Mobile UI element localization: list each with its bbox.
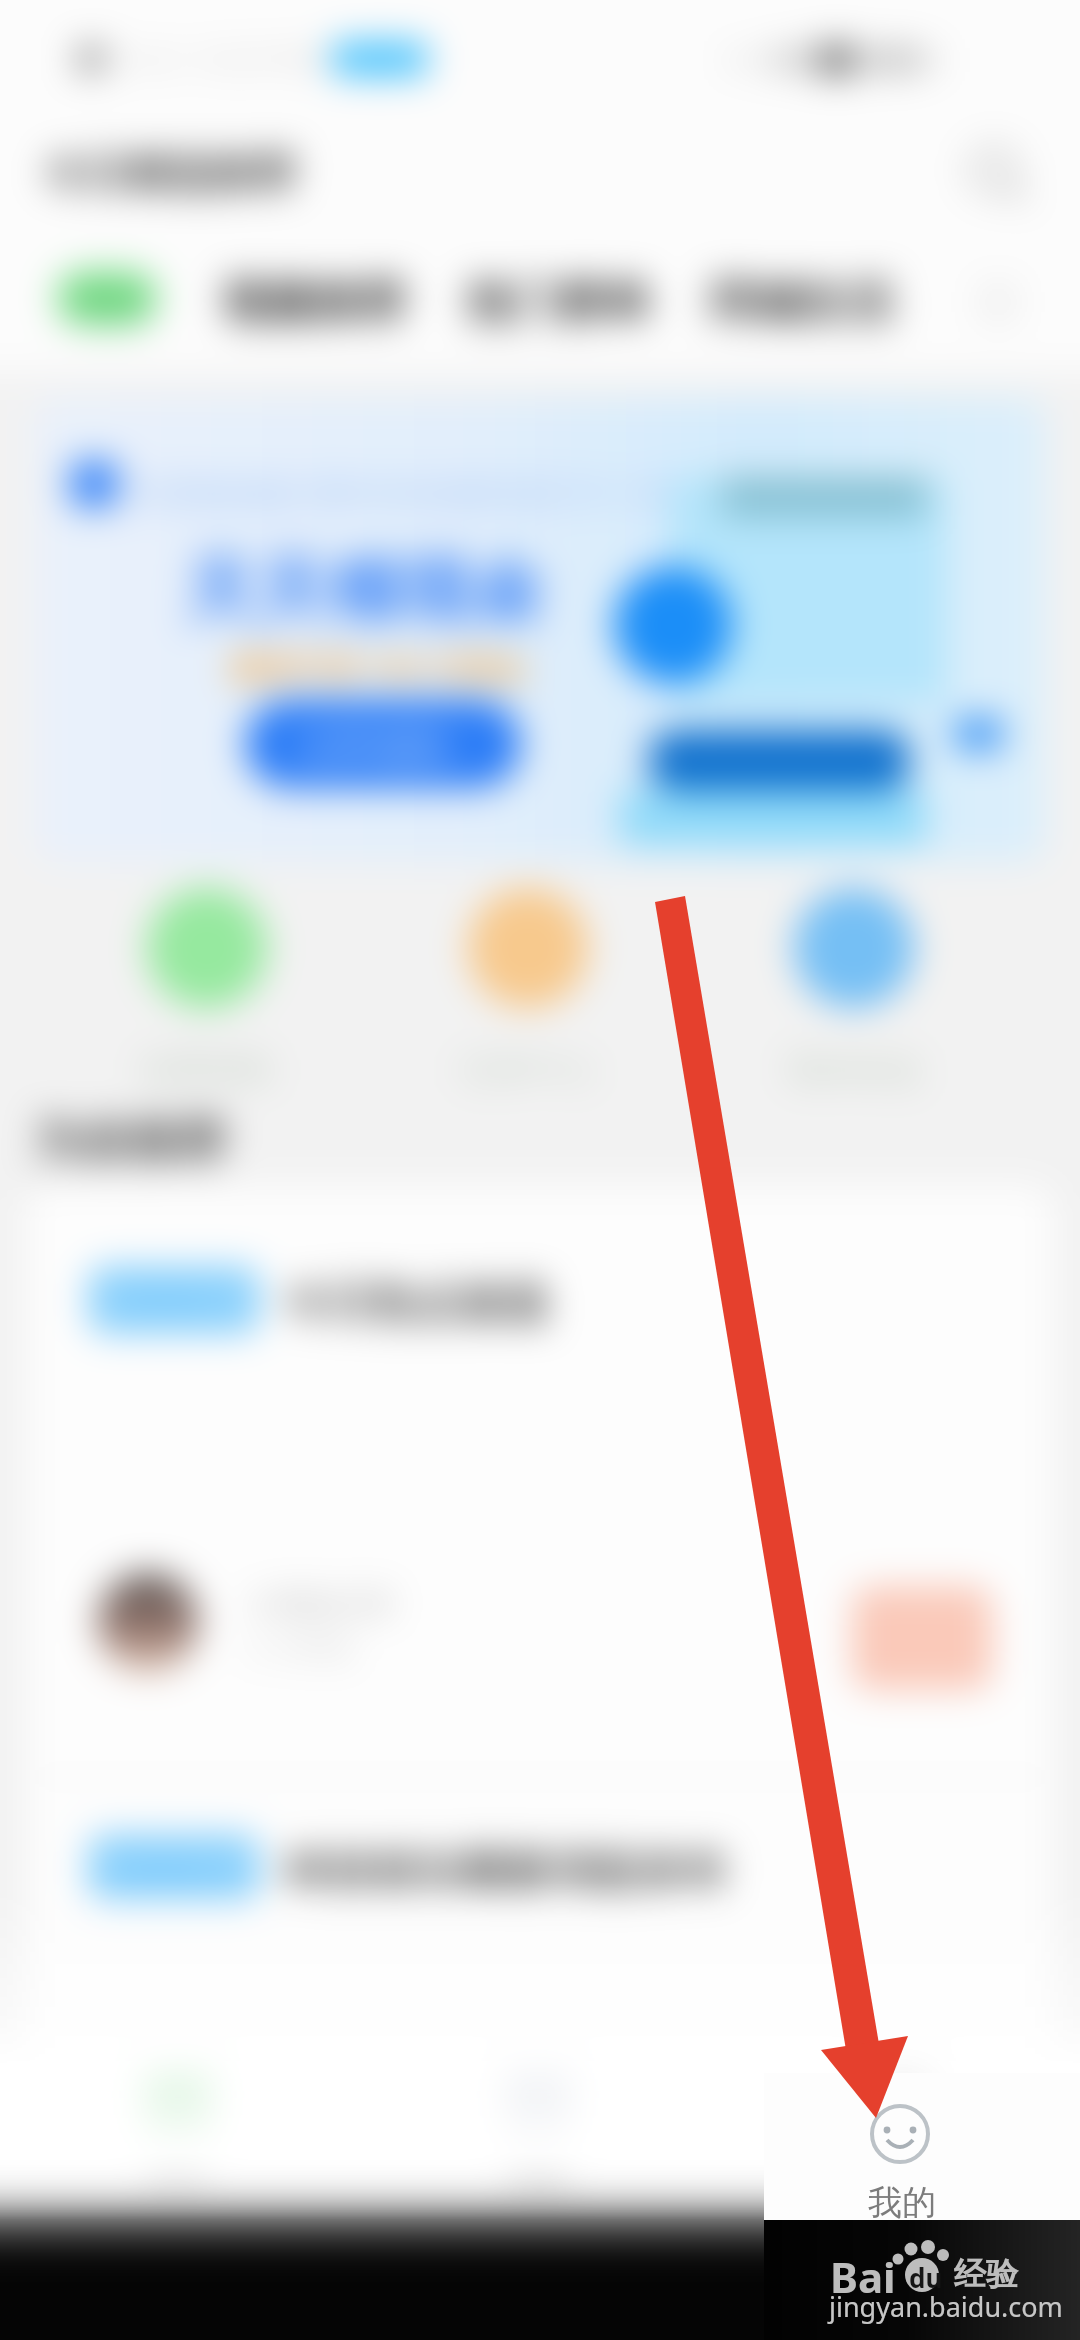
staticText: 立即领取	[297, 724, 449, 772]
staticText: du	[909, 2260, 943, 2295]
staticText: 今日精选推荐	[44, 148, 296, 201]
staticText: 10:24 今日天气晴	[114, 41, 324, 77]
staticText: 我的	[868, 2150, 928, 2188]
staticText: 天天领现金	[184, 546, 544, 637]
button[interactable]: 我的	[764, 2073, 1080, 2220]
staticText: 为你推荐	[34, 1112, 226, 1172]
staticText: 视频	[508, 2150, 568, 2188]
staticText: 关注	[70, 280, 146, 328]
staticText: 首页	[148, 2150, 208, 2188]
staticText: 科技前沿最新消息发布	[286, 1844, 726, 1899]
staticText: 同城生活	[709, 274, 893, 332]
staticText: jingyan.baidu.com	[829, 2288, 1063, 2325]
staticText: 今日热点速递	[284, 1276, 548, 1331]
staticText: 置顶	[132, 1280, 204, 1325]
staticText: 热门榜单	[467, 274, 651, 332]
staticText: 热议	[132, 1848, 204, 1893]
staticText: 我的	[868, 2181, 936, 2224]
staticText: Bai	[830, 2248, 896, 2305]
staticText: 经验	[954, 2254, 1018, 2294]
staticText: 百度极速版 限时活动福利进行中 立即参与	[130, 470, 760, 516]
staticText: 最高可得 188 元现金	[230, 646, 526, 690]
staticText: 视频推荐	[222, 274, 406, 332]
other: 我的	[869, 2103, 931, 2165]
